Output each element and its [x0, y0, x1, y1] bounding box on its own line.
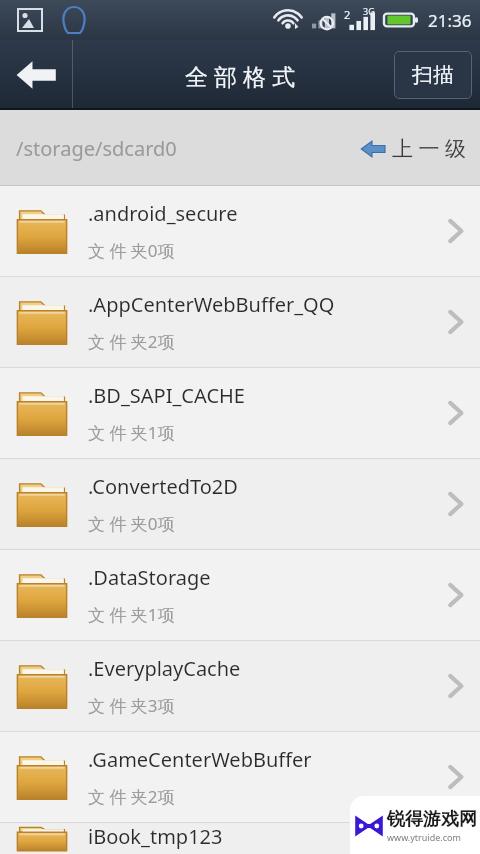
button[interactable]: .GameCenterWebBuffer — [0, 732, 480, 822]
staticText: .DataStorage — [88, 564, 211, 591]
button[interactable]: .BD_SAPI_CACHE — [0, 368, 480, 458]
staticText: 锐得游戏网 — [387, 808, 477, 831]
staticText: 文 件 夹2项 — [88, 330, 175, 353]
staticText: /storage/sdcard0 — [16, 135, 177, 162]
staticText: .BD_SAPI_CACHE — [88, 382, 245, 409]
staticText: 上 一 级 — [392, 134, 466, 163]
staticText: .android_secure — [88, 200, 238, 227]
staticText: 2 — [344, 7, 351, 22]
button[interactable]: .DataStorage — [0, 550, 480, 640]
staticText: 21:36 — [428, 9, 472, 32]
staticText: .EveryplayCache — [88, 655, 241, 682]
staticText: iBook_tmp123 — [88, 823, 223, 850]
button[interactable]: 上 一 级 — [360, 134, 466, 163]
button[interactable]: .EveryplayCache — [0, 641, 480, 731]
staticText: 3G — [363, 5, 375, 17]
staticText: 全 部 格 式 — [185, 60, 295, 91]
button[interactable]: 扫描 — [394, 51, 472, 99]
button[interactable]: .ConvertedTo2D — [0, 459, 480, 549]
staticText: 扫描 — [412, 62, 454, 88]
staticText: .ConvertedTo2D — [88, 473, 238, 500]
staticText: 文 件 夹1项 — [88, 421, 175, 444]
staticText: .AppCenterWebBuffer_QQ — [88, 291, 335, 318]
staticText: 文 件 夹0项 — [88, 512, 175, 535]
staticText: 文 件 夹3项 — [88, 694, 175, 717]
staticText: 文 件 夹1项 — [88, 603, 175, 626]
button[interactable]: .AppCenterWebBuffer_QQ — [0, 277, 480, 367]
button[interactable]: 返回 — [0, 40, 72, 110]
staticText: 文 件 夹2项 — [88, 785, 175, 808]
staticText: www.ytruide.com — [387, 831, 461, 843]
staticText: 文 件 夹0项 — [88, 239, 175, 262]
button[interactable]: .android_secure — [0, 186, 480, 276]
staticText: .GameCenterWebBuffer — [88, 746, 312, 773]
button[interactable]: iBook_tmp123 — [0, 823, 480, 854]
